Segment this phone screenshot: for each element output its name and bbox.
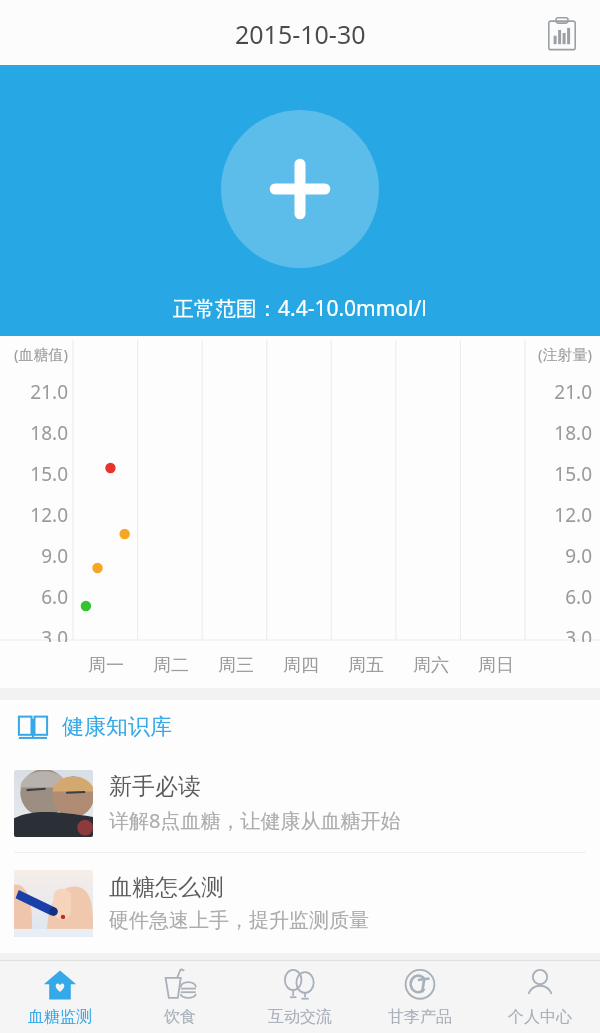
- staticText: (注射量): [530, 344, 592, 364]
- staticText: 18.0: [6, 420, 68, 446]
- staticText: 正常范围：4.4-10.0mmol/l: [173, 294, 427, 323]
- staticText: 3.0: [530, 625, 592, 642]
- staticText: 甘李产品: [388, 1007, 452, 1027]
- staticText: 6.0: [6, 584, 68, 610]
- button[interactable]: 周四: [268, 642, 333, 688]
- staticText: 个人中心: [508, 1007, 572, 1027]
- staticText: 21.0: [6, 379, 68, 405]
- staticText: 周日: [478, 654, 514, 677]
- staticText: 周二: [153, 654, 189, 677]
- button[interactable]: 周日: [463, 642, 528, 688]
- button[interactable]: 周三: [203, 642, 268, 688]
- button[interactable]: 饮食: [120, 961, 240, 1033]
- staticText: 15.0: [530, 461, 592, 487]
- staticText: 6.0: [530, 584, 592, 610]
- staticText: 15.0: [6, 461, 68, 487]
- staticText: (血糖值): [6, 344, 68, 364]
- staticText: 周六: [413, 654, 449, 677]
- staticText: 血糖怎么测: [109, 873, 224, 902]
- staticText: 血糖监测: [28, 1007, 92, 1027]
- staticText: 健康知识库: [62, 713, 172, 741]
- staticText: 12.0: [6, 502, 68, 528]
- staticText: 互动交流: [268, 1007, 332, 1027]
- staticText: 9.0: [530, 543, 592, 569]
- button[interactable]: 甘李产品: [360, 961, 480, 1033]
- staticText: 21.0: [530, 379, 592, 405]
- staticText: 18.0: [530, 420, 592, 446]
- staticText: 周四: [283, 654, 319, 677]
- staticText: 3.0: [6, 625, 68, 642]
- staticText: 周五: [348, 654, 384, 677]
- staticText: 硬件急速上手，提升监测质量: [109, 908, 369, 933]
- staticText: 饮食: [164, 1007, 196, 1027]
- button[interactable]: 周五: [333, 642, 398, 688]
- staticText: 新手必读: [109, 772, 201, 801]
- button[interactable]: 健康知识库: [0, 700, 600, 754]
- button[interactable]: 个人中心: [480, 961, 600, 1033]
- button[interactable]: 周二: [138, 642, 203, 688]
- button[interactable]: 血糖怎么测: [0, 853, 600, 953]
- button[interactable]: 周一: [73, 642, 138, 688]
- staticText: 2015-10-30: [235, 17, 366, 51]
- button[interactable]: 新手必读: [0, 754, 600, 852]
- staticText: 12.0: [530, 502, 592, 528]
- staticText: 周一: [88, 654, 124, 677]
- staticText: 9.0: [6, 543, 68, 569]
- button[interactable]: Add record: [221, 110, 379, 268]
- staticText: 详解8点血糖，让健康从血糖开始: [109, 807, 401, 834]
- staticText: 周三: [218, 654, 254, 677]
- button[interactable]: 互动交流: [240, 961, 360, 1033]
- button[interactable]: 周六: [398, 642, 463, 688]
- button[interactable]: 血糖监测: [0, 961, 120, 1033]
- button[interactable]: Records: [538, 10, 586, 58]
